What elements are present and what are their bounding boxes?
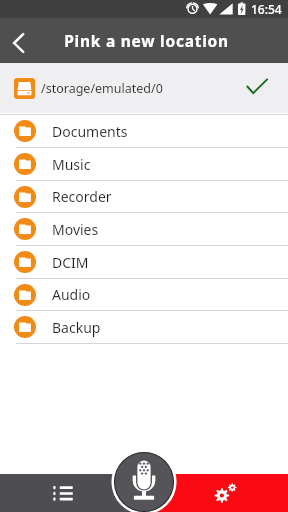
button[interactable]: Settings	[144, 474, 288, 512]
staticText: Pink a new location	[64, 30, 229, 51]
button[interactable]: Audio	[0, 279, 288, 310]
button[interactable]: Record	[114, 452, 174, 512]
staticText: /storage/emulated/0	[41, 80, 163, 97]
button[interactable]: Backup	[0, 311, 288, 343]
staticText: Audio	[52, 285, 91, 304]
staticText: Movies	[52, 220, 99, 239]
button[interactable]: Movies	[0, 213, 288, 245]
staticText: Documents	[52, 122, 128, 141]
staticText: Music	[52, 155, 91, 174]
button[interactable]: /storage/emulated/0	[0, 63, 288, 113]
button[interactable]: Recorder	[0, 181, 288, 212]
button[interactable]: List	[0, 474, 144, 512]
button[interactable]: Documents	[0, 115, 288, 147]
staticText: Recorder	[52, 187, 112, 206]
button[interactable]: Back	[0, 22, 38, 60]
button[interactable]: DCIM	[0, 246, 288, 278]
staticText: Backup	[52, 318, 101, 337]
staticText: DCIM	[52, 253, 89, 272]
staticText: 16:54	[251, 1, 282, 17]
button[interactable]: Music	[0, 148, 288, 180]
